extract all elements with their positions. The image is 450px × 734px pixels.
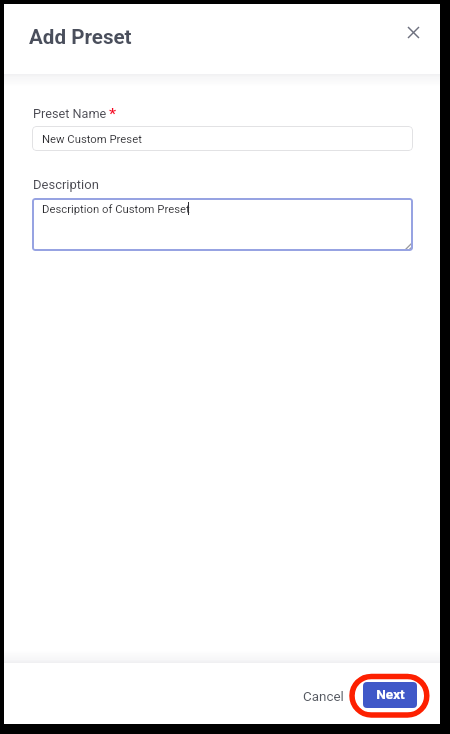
button[interactable]: Description of Custom Preset <box>32 198 413 251</box>
staticText: * <box>109 105 117 123</box>
staticText: Description <box>33 177 99 192</box>
button[interactable]: Cancel <box>299 681 348 713</box>
staticText: Add Preset <box>29 25 132 49</box>
button[interactable]: New Custom Preset <box>32 126 413 151</box>
button[interactable]: Next <box>363 682 417 708</box>
button[interactable]: Close dialog <box>393 12 433 52</box>
staticText: Description of Custom Preset <box>42 203 190 216</box>
staticText: Next <box>376 686 405 702</box>
staticText: Preset Name <box>33 106 107 121</box>
staticText: New Custom Preset <box>42 133 142 146</box>
staticText: Cancel <box>303 689 344 705</box>
